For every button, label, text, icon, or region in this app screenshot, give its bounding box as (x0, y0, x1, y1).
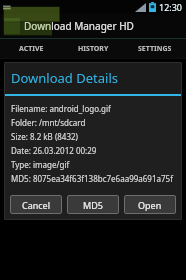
staticText: MD5 (83, 199, 103, 211)
staticText: Cancel (22, 199, 51, 211)
button[interactable]: ACTIVE (0, 39, 62, 58)
button[interactable]: SETTINGS (124, 39, 186, 58)
staticText: ACTIVE (19, 44, 44, 54)
staticText: HISTORY (78, 44, 109, 54)
button[interactable]: HISTORY (62, 39, 124, 58)
staticText: 12:30 (159, 1, 183, 13)
staticText: MD5: 8075ea34f63f138bc7e6aa99a691a75f (11, 173, 173, 184)
staticText: Size: 8.2 kB (8432) (11, 131, 78, 142)
staticText: Download Details (11, 69, 118, 87)
staticText: Date: 26.03.2012 00:29 (11, 145, 97, 156)
staticText: Download Manager HD (24, 19, 134, 33)
staticText: SETTINGS (138, 44, 172, 54)
staticText: Open (138, 199, 162, 211)
staticText: Folder: /mnt/sdcard (11, 117, 86, 128)
staticText: Filename: android_logo.gif (11, 103, 111, 114)
button[interactable]: MD5 (67, 195, 119, 214)
button[interactable]: Cancel (10, 195, 62, 214)
staticText: Type: image/gif (11, 159, 70, 170)
button[interactable]: Open (124, 195, 176, 214)
